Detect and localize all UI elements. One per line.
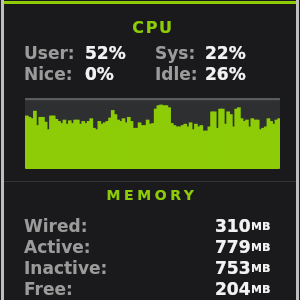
staticText: Wired:	[24, 216, 88, 236]
staticText: MB	[251, 283, 271, 296]
staticText: Sys:	[155, 43, 196, 63]
staticText: Idle:	[155, 64, 198, 84]
staticText: CPU	[3, 18, 300, 37]
staticText: Free:	[24, 279, 73, 299]
staticText: MEMORY	[2, 187, 300, 203]
staticText: Active:	[24, 237, 91, 257]
staticText: 753	[215, 258, 251, 278]
staticText: Inactive:	[24, 258, 108, 278]
staticText: Nice:	[24, 64, 73, 84]
staticText: MB	[251, 241, 271, 254]
button[interactable]: Wired:	[24, 216, 271, 236]
button[interactable]: Active:	[24, 237, 271, 257]
button[interactable]: Inactive:	[24, 258, 271, 278]
staticText: 779	[215, 237, 251, 257]
staticText: 310	[215, 216, 251, 236]
button[interactable]: CPU	[3, 18, 300, 37]
staticText: MB	[251, 220, 271, 233]
staticText: 26%	[205, 64, 246, 84]
button[interactable]: CPU history graph	[25, 98, 280, 169]
button[interactable]: Free:	[24, 279, 271, 299]
staticText: MB	[251, 262, 271, 275]
staticText: 22%	[205, 43, 246, 63]
staticText: 204	[215, 279, 251, 299]
staticText: 52%	[85, 43, 126, 63]
staticText: User:	[24, 43, 75, 63]
button[interactable]: MEMORY	[2, 187, 300, 203]
staticText: 0%	[85, 64, 114, 84]
